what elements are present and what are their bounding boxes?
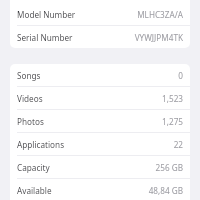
staticText: Songs: [17, 70, 41, 81]
staticText: 1,275: [162, 116, 183, 127]
staticText: Model Number: [17, 9, 76, 20]
button[interactable]: Applications: [10, 133, 190, 155]
staticText: MLHC3ZA/A: [137, 9, 183, 20]
button[interactable]: Available: [10, 179, 190, 200]
staticText: 0: [178, 70, 183, 81]
button[interactable]: Videos: [10, 87, 190, 109]
staticText: Photos: [17, 116, 44, 127]
staticText: Applications: [17, 139, 65, 150]
staticText: VYWJJPM4TK: [134, 32, 183, 43]
staticText: 256 GB: [155, 162, 183, 173]
button[interactable]: Serial Number: [10, 26, 190, 48]
button[interactable]: Capacity: [10, 156, 190, 178]
staticText: 48,84 GB: [148, 185, 183, 196]
staticText: Available: [17, 185, 52, 196]
staticText: Serial Number: [17, 32, 73, 43]
staticText: 1,523: [162, 93, 183, 104]
button[interactable]: Photos: [10, 110, 190, 132]
button[interactable]: Songs: [10, 64, 190, 86]
staticText: Videos: [17, 93, 43, 104]
staticText: 22: [173, 139, 183, 150]
button[interactable]: Model Number: [10, 3, 190, 25]
staticText: Capacity: [17, 162, 50, 173]
